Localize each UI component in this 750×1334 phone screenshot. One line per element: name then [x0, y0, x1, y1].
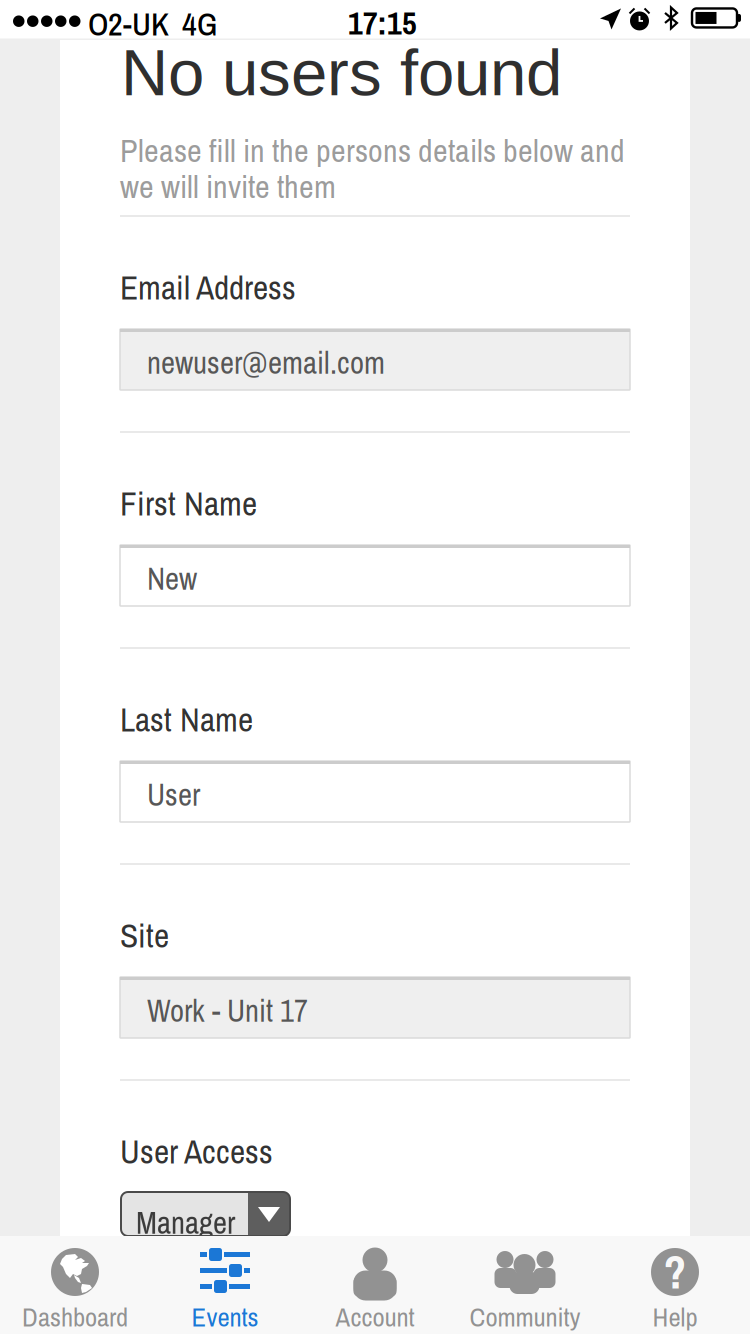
staticText: Community — [469, 1299, 580, 1334]
button[interactable]: newuser@email.com — [120, 329, 630, 390]
staticText: 17:15 — [348, 1, 417, 44]
staticText: Please fill in the persons details below… — [120, 129, 625, 172]
button[interactable]: Work - Unit 17 — [120, 977, 630, 1038]
staticText: Dashboard — [22, 1299, 128, 1334]
staticText: First Name — [120, 481, 257, 526]
staticText: 4G — [182, 2, 217, 45]
staticText: No users found — [121, 36, 562, 109]
button[interactable]: User — [120, 761, 630, 822]
staticText: User Access — [120, 1129, 273, 1174]
staticText: O2-UK — [88, 2, 169, 45]
staticText: Account — [335, 1299, 414, 1334]
staticText: Manager — [136, 1202, 235, 1243]
staticText: User — [147, 774, 200, 815]
button[interactable]: Account — [300, 1236, 450, 1334]
button[interactable]: Community — [450, 1236, 600, 1334]
button[interactable]: Events — [150, 1236, 300, 1334]
staticText: newuser@email.com — [147, 342, 385, 383]
staticText: Site — [120, 913, 169, 958]
staticText: Email Address — [120, 265, 296, 310]
button[interactable]: Manager — [121, 1192, 290, 1236]
staticText: Events — [191, 1299, 258, 1334]
button[interactable]: New — [120, 545, 630, 606]
button[interactable]: ? — [600, 1236, 750, 1334]
staticText: Last Name — [120, 697, 253, 742]
staticText: New — [147, 558, 197, 599]
staticText: we will invite them — [120, 165, 336, 208]
staticText: ? — [663, 1241, 686, 1303]
button[interactable]: Dashboard — [0, 1236, 150, 1334]
staticText: Help — [652, 1299, 697, 1334]
staticText: Work - Unit 17 — [147, 990, 308, 1031]
